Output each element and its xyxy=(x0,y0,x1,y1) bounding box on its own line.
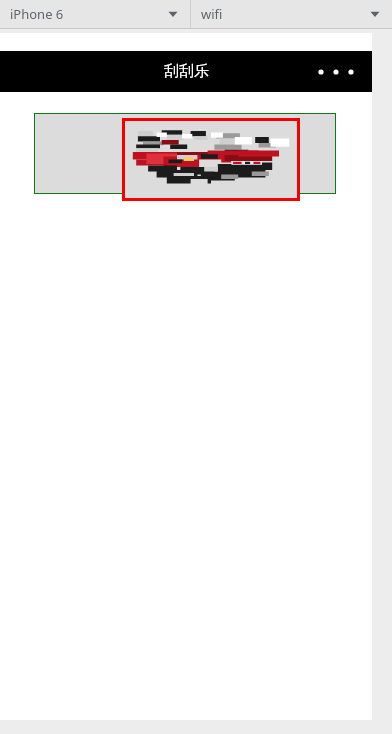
button[interactable] xyxy=(34,113,336,194)
button[interactable]: Scratch card xyxy=(122,118,300,201)
staticText: iPhone 6 xyxy=(10,5,64,23)
button[interactable]: iPhone 6 xyxy=(0,0,190,28)
staticText: 刮刮乐 xyxy=(164,62,209,81)
button[interactable]: wifi xyxy=(191,0,392,28)
staticText: wifi xyxy=(201,5,223,23)
button[interactable]: More options xyxy=(316,56,356,88)
